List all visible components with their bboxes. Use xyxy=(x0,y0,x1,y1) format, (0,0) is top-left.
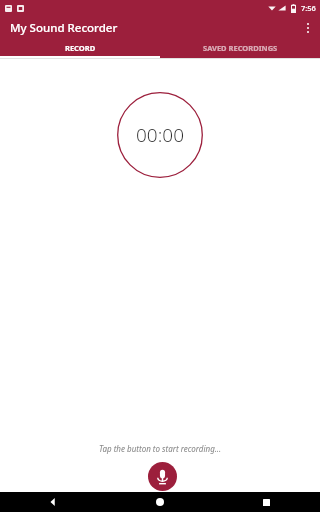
button[interactable]: RECORD xyxy=(0,40,160,56)
staticText: Tap the button to start recording... xyxy=(0,443,320,454)
staticText: SAVED RECORDINGS xyxy=(203,43,278,53)
staticText: 7:56 xyxy=(301,3,316,13)
button[interactable]: Back xyxy=(0,492,106,512)
button[interactable]: Recent apps xyxy=(213,492,320,512)
staticText: RECORD xyxy=(65,43,96,53)
staticText: My Sound Recorder xyxy=(10,20,118,36)
button[interactable]: More options xyxy=(296,16,320,40)
button[interactable]: SAVED RECORDINGS xyxy=(160,40,320,56)
button[interactable]: Home xyxy=(106,492,213,512)
staticText: 00:00 xyxy=(136,122,185,148)
button[interactable]: Start recording xyxy=(148,462,177,491)
